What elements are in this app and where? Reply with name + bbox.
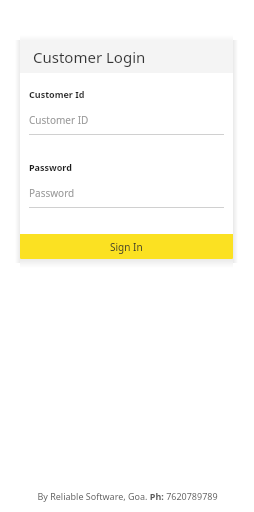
button[interactable]: Customer ID input field: [29, 113, 224, 135]
staticText: Customer Id: [29, 88, 85, 100]
staticText: Customer Login: [33, 47, 146, 67]
staticText: Sign In: [110, 240, 143, 254]
staticText: Password: [29, 161, 72, 173]
staticText: By Reliable Software, Goa. Ph: 762078978…: [37, 490, 218, 502]
staticText: Customer ID: [29, 113, 89, 127]
staticText: Password: [29, 186, 75, 200]
button[interactable]: Sign In: [20, 234, 233, 259]
button[interactable]: Password input field: [29, 186, 224, 208]
